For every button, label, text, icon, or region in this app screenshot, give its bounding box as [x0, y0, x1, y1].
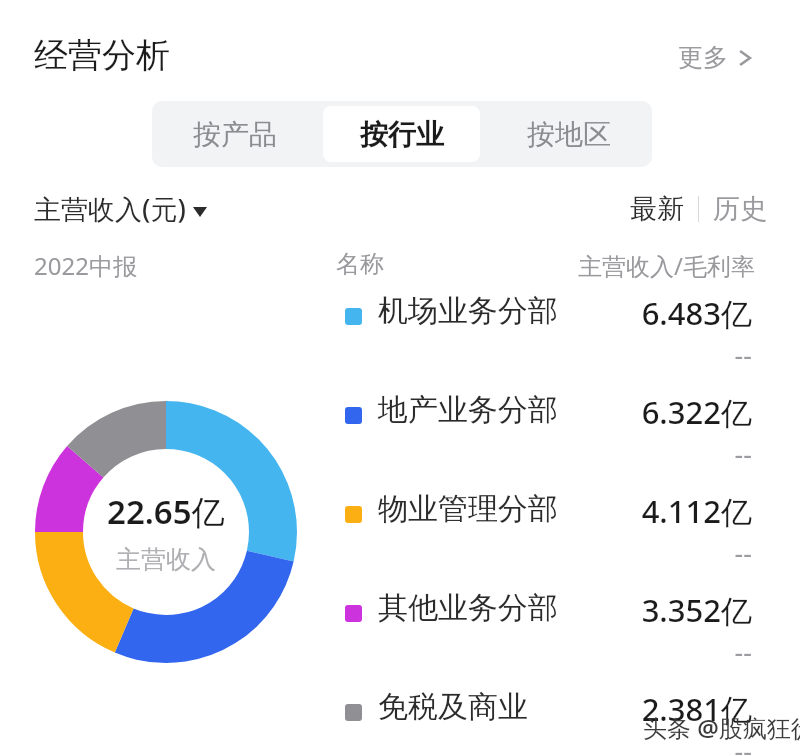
- staticText: 6.483亿: [641, 292, 752, 334]
- staticText: 2022中报: [34, 249, 137, 282]
- staticText: 免税及商业: [378, 688, 528, 726]
- button[interactable]: 物业管理分部: [336, 490, 776, 586]
- other: 主营收入构成环形图: [35, 401, 297, 663]
- staticText: --: [734, 435, 752, 472]
- staticText: 名称: [336, 249, 384, 279]
- staticText: 机场业务分部: [378, 292, 558, 330]
- staticText: 3.352亿: [641, 589, 752, 631]
- staticText: 最新: [630, 192, 684, 226]
- staticText: 物业管理分部: [378, 490, 558, 528]
- button[interactable]: 按行业: [323, 106, 480, 162]
- button[interactable]: 更多: [672, 36, 758, 79]
- button[interactable]: 机场业务分部: [336, 292, 776, 388]
- button[interactable]: 按产品: [157, 106, 313, 162]
- staticText: --: [734, 633, 752, 670]
- staticText: 6.322亿: [641, 391, 752, 433]
- staticText: 头条 @股疯狂徒: [643, 711, 800, 744]
- button[interactable]: 免税及商业: [336, 688, 776, 755]
- staticText: 4.112亿: [641, 490, 752, 532]
- button[interactable]: 其他业务分部: [336, 589, 776, 685]
- staticText: --: [734, 336, 752, 373]
- staticText: 按行业: [360, 117, 444, 152]
- button[interactable]: 按地区: [490, 106, 647, 162]
- staticText: 主营收入(元): [34, 190, 186, 227]
- staticText: 经营分析: [34, 34, 170, 77]
- staticText: 2.381亿: [641, 688, 752, 730]
- staticText: 按产品: [193, 117, 277, 152]
- staticText: 按地区: [527, 117, 611, 152]
- staticText: 地产业务分部: [378, 391, 558, 429]
- button[interactable]: 最新: [624, 188, 690, 230]
- staticText: 更多: [678, 42, 728, 73]
- button[interactable]: 地产业务分部: [336, 391, 776, 487]
- staticText: 其他业务分部: [378, 589, 558, 627]
- staticText: 历史: [713, 192, 767, 226]
- staticText: 主营收入: [116, 544, 216, 575]
- staticText: 22.65亿: [107, 489, 225, 534]
- button[interactable]: 主营收入(元): [30, 186, 211, 231]
- staticText: 主营收入/毛利率: [578, 249, 755, 282]
- staticText: --: [734, 534, 752, 571]
- button[interactable]: 历史: [707, 188, 773, 230]
- staticText: --: [734, 732, 752, 755]
